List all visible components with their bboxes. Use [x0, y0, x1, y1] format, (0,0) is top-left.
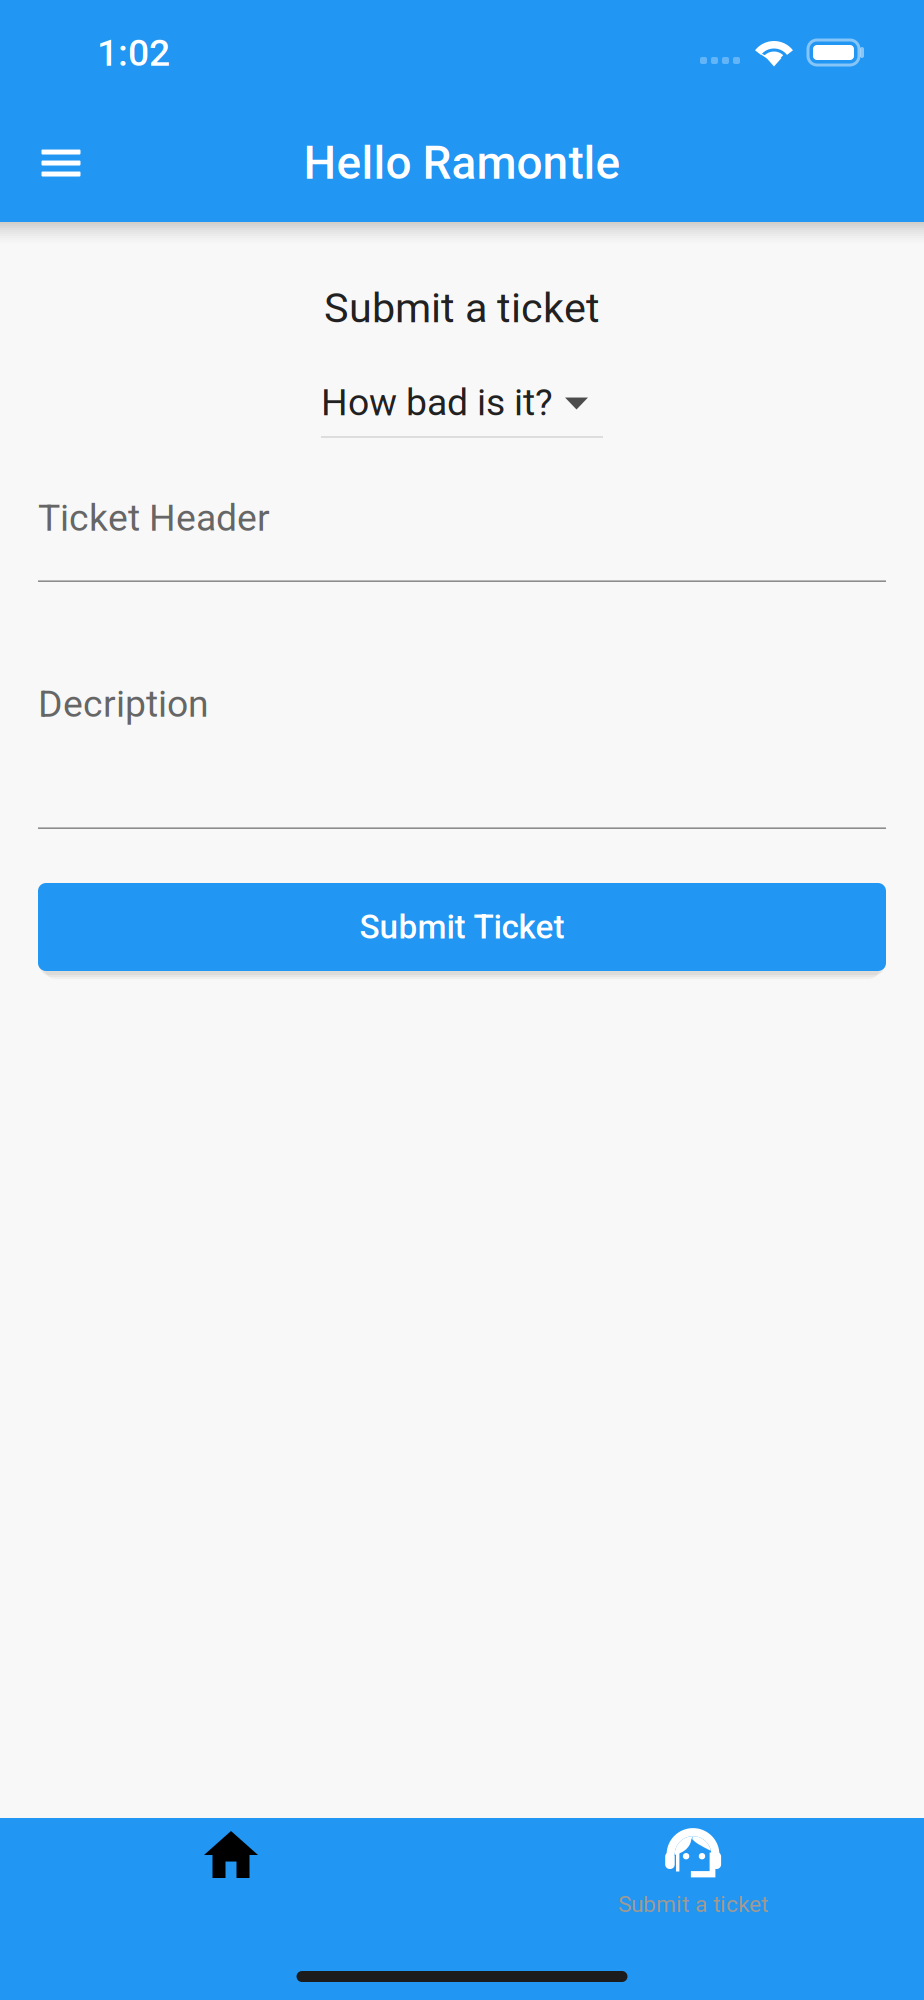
button[interactable]: Home [0, 1818, 462, 2000]
staticText: Submit a ticket [618, 1891, 768, 1918]
staticText: Ticket Header [38, 496, 270, 540]
button[interactable]: How bad is it? [321, 377, 603, 438]
button[interactable]: Submit Ticket [38, 883, 886, 971]
staticText: Submit Ticket [359, 907, 564, 947]
staticText: Decription [38, 682, 209, 726]
staticText: Submit a ticket [324, 284, 600, 332]
staticText: Hello Ramontle [303, 136, 620, 190]
button[interactable]: Menu [21, 123, 101, 203]
staticText: How bad is it? [321, 381, 553, 424]
staticText: 1:02 [97, 31, 170, 75]
button[interactable]: Submit a ticket [462, 1818, 924, 2000]
